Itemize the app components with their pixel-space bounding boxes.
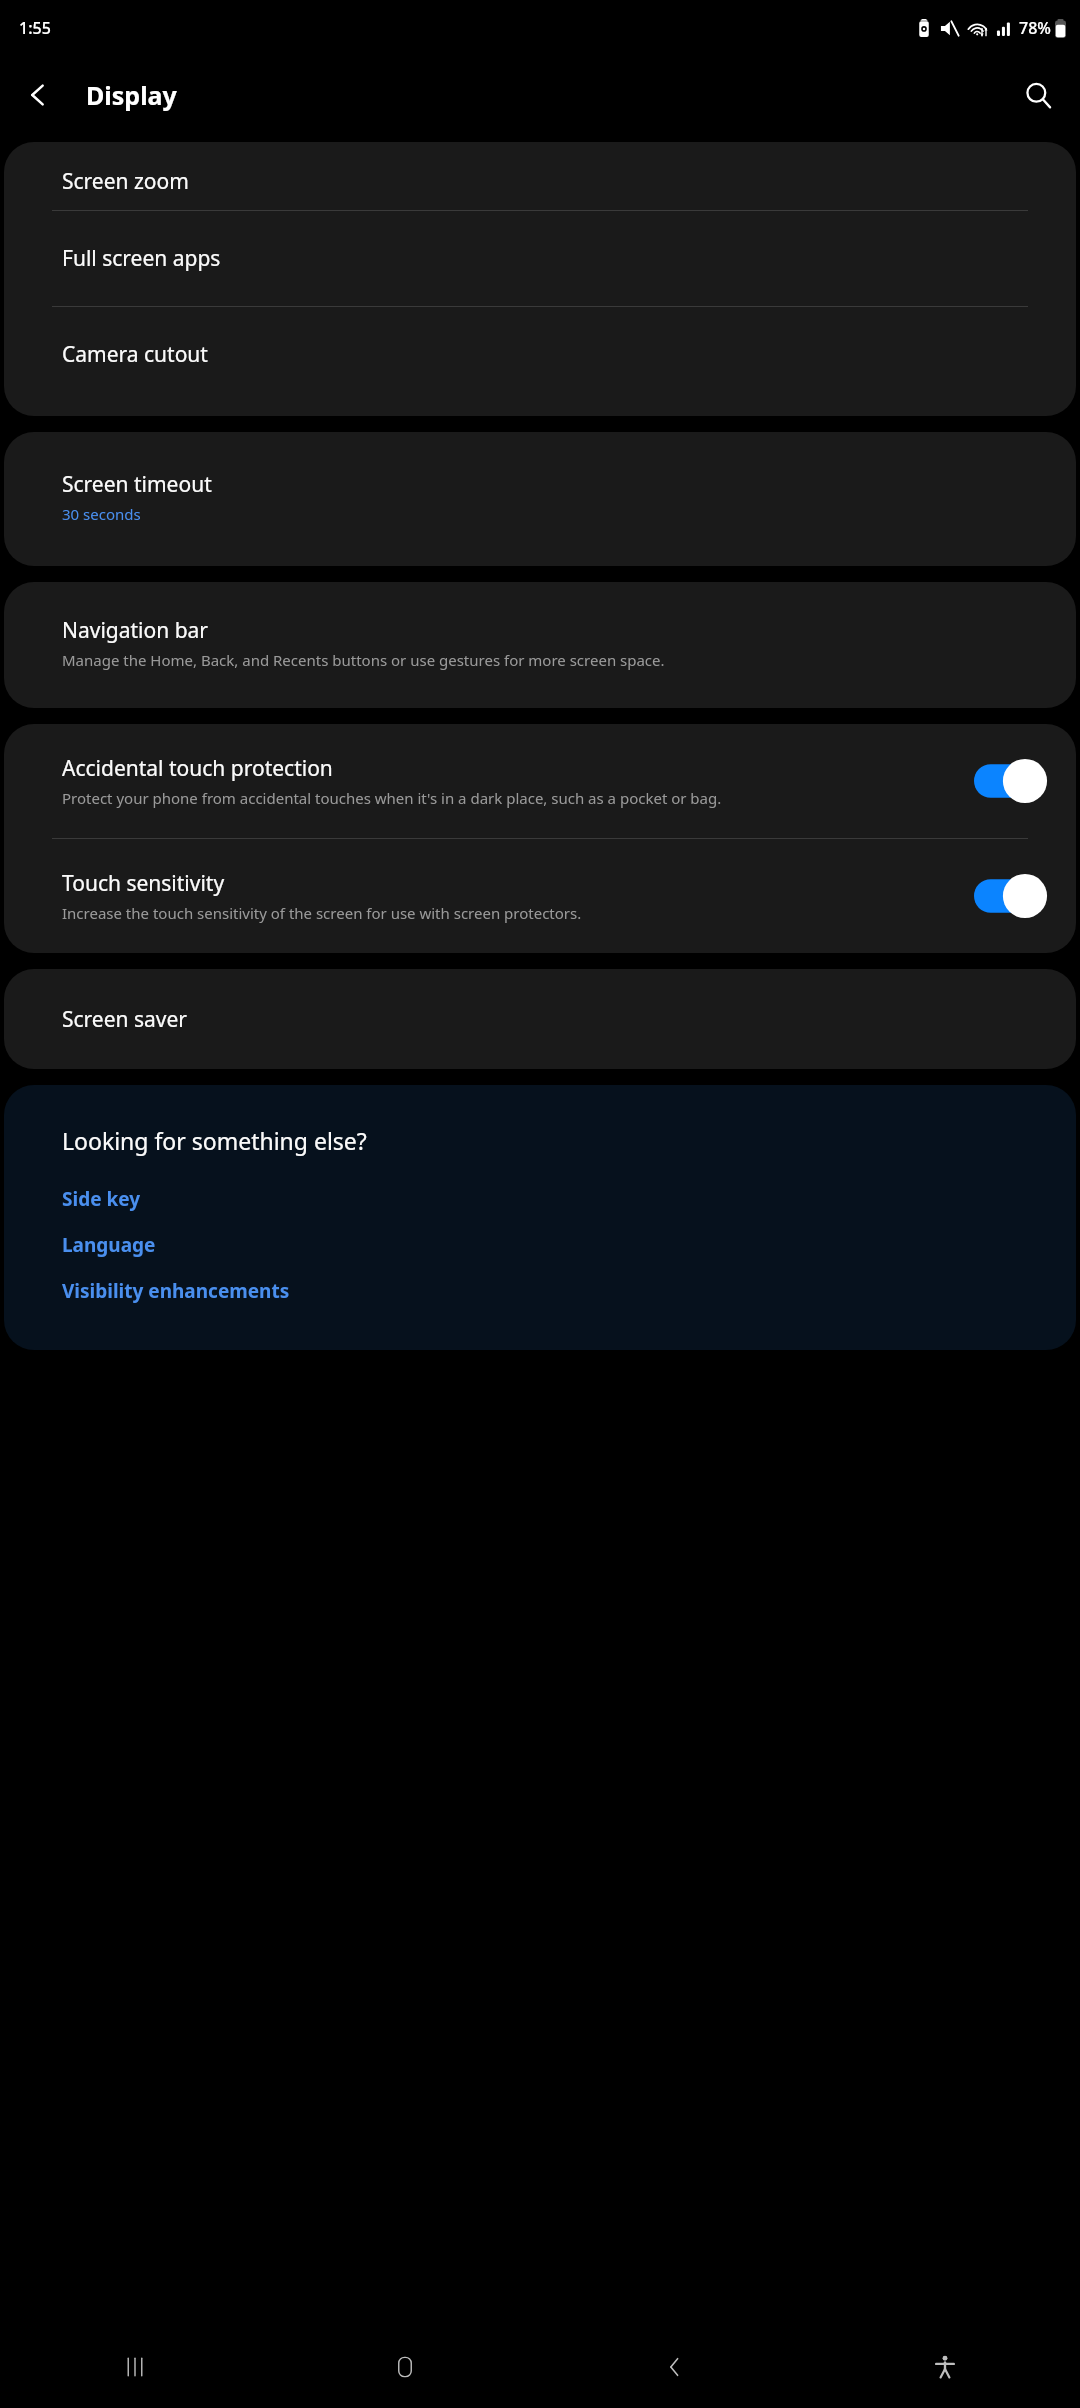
staticText: Increase the touch sensitivity of the sc… <box>62 903 582 923</box>
button[interactable]: Accessibility <box>810 2326 1080 2408</box>
staticText: Screen saver <box>62 1005 188 1034</box>
button[interactable]: Screen zoom <box>4 142 1076 210</box>
button[interactable]: Recents <box>0 2326 270 2408</box>
button[interactable]: Back <box>540 2326 810 2408</box>
button[interactable]: Side key <box>4 1176 1076 1222</box>
staticText: Touch sensitivity <box>62 869 225 898</box>
button[interactable]: Search <box>1010 67 1066 123</box>
button[interactable]: Camera cutout <box>4 307 1076 402</box>
button[interactable]: Touch sensitivity <box>4 839 1076 953</box>
staticText: 30 seconds <box>62 504 141 524</box>
staticText: Navigation bar <box>62 616 209 645</box>
staticText: 1:55 <box>19 17 51 39</box>
staticText: Manage the Home, Back, and Recents butto… <box>62 650 665 670</box>
button[interactable]: Screen saver <box>4 969 1076 1069</box>
staticText: Looking for something else? <box>62 1125 367 1156</box>
staticText: 78% <box>1019 17 1051 39</box>
staticText: Protect your phone from accidental touch… <box>62 788 722 808</box>
button[interactable]: Back <box>10 67 66 123</box>
staticText: Side key <box>62 1186 141 1212</box>
button[interactable]: Accidental touch protection <box>4 724 1076 838</box>
staticText: Screen zoom <box>62 167 189 196</box>
staticText: Screen timeout <box>62 470 212 499</box>
button[interactable]: Navigation bar <box>4 582 1076 708</box>
staticText: Full screen apps <box>62 244 221 273</box>
button[interactable]: Visibility enhancements <box>4 1268 1076 1314</box>
button[interactable]: Language <box>4 1222 1076 1268</box>
staticText: Visibility enhancements <box>62 1278 290 1304</box>
button[interactable]: Full screen apps <box>4 211 1076 306</box>
button[interactable]: Home <box>270 2326 540 2408</box>
staticText: Language <box>62 1232 156 1258</box>
button[interactable]: Screen timeout <box>4 432 1076 566</box>
staticText: Display <box>86 78 177 112</box>
staticText: Accidental touch protection <box>62 754 333 783</box>
staticText: Camera cutout <box>62 340 208 369</box>
